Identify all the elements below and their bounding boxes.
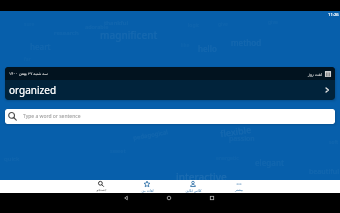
staticText: سه شنبه ۲۷ بهمن ۱۴۰۰ xyxy=(9,71,48,76)
button[interactable]: Search xyxy=(5,109,335,124)
staticText: magnificent xyxy=(100,28,158,42)
staticText: method xyxy=(231,37,262,48)
other: My words xyxy=(144,181,150,187)
other: Home xyxy=(166,195,172,201)
staticText: organized xyxy=(9,83,57,97)
staticText: interactive xyxy=(176,170,227,184)
other: More xyxy=(236,181,242,187)
staticText: passion xyxy=(229,134,255,144)
staticText: elegant xyxy=(255,157,284,168)
staticText: Type a word or sentence xyxy=(23,113,81,120)
other: Word of the day xyxy=(324,70,332,78)
other: Online class xyxy=(190,181,196,187)
staticText: hello xyxy=(198,43,217,54)
staticText: کلاس آنلاین xyxy=(185,188,202,193)
other: Open word xyxy=(323,86,331,94)
staticText: flexible xyxy=(219,123,253,139)
button[interactable]: سه شنبه ۲۷ بهمن ۱۴۰۰ xyxy=(5,67,335,100)
staticText: heart xyxy=(30,41,51,52)
button[interactable]: More xyxy=(216,180,262,193)
other: Recents xyxy=(209,195,215,201)
button[interactable]: My words xyxy=(124,180,170,193)
staticText: لغات من xyxy=(141,188,154,193)
staticText: 11:26 xyxy=(328,12,339,18)
staticText: beautiful xyxy=(309,167,340,177)
staticText: بیشتر xyxy=(235,188,243,192)
button[interactable]: Search xyxy=(78,180,124,193)
staticText: thankful xyxy=(104,19,129,27)
staticText: جستجو xyxy=(96,188,107,192)
button[interactable]: Online class xyxy=(170,180,216,193)
other: Search xyxy=(98,181,104,187)
other: Search xyxy=(8,112,17,121)
staticText: لغت روز xyxy=(308,72,322,77)
other: Back xyxy=(123,195,129,201)
